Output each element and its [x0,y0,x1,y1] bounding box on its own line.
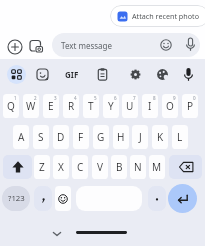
button[interactable]: Z [34,155,50,179]
button[interactable] [7,39,23,55]
staticText: Attach recent photo [132,11,200,21]
staticText: R [68,99,75,113]
button[interactable] [29,39,44,54]
staticText: H [117,130,125,144]
button[interactable]: S [33,125,49,149]
staticText: A [18,130,25,144]
button[interactable] [148,186,166,211]
button[interactable] [51,230,63,238]
staticText: K [157,130,164,144]
staticText: P [187,99,194,113]
staticText: J [139,130,142,144]
button[interactable]: I [142,94,158,118]
button[interactable] [184,38,197,52]
button[interactable] [149,61,176,88]
button[interactable]: F [73,125,89,149]
button[interactable] [89,61,116,88]
button[interactable]: V [92,155,108,179]
staticText: Y [108,99,114,113]
staticText: F [78,130,84,144]
staticText: 5 [94,95,97,101]
staticText: 7 [133,95,136,101]
button[interactable]: D [53,125,69,149]
staticText: X [58,160,64,174]
button[interactable]: W [23,94,39,118]
button[interactable]: R [63,94,79,118]
staticText: 4 [74,95,77,101]
button[interactable]: E [43,94,59,118]
button[interactable]: U [122,94,138,118]
staticText: G [97,130,105,144]
button[interactable]: Q [3,94,19,118]
staticText: 3 [54,95,57,101]
staticText: T [88,99,94,113]
staticText: L [177,130,183,144]
button[interactable]: B [111,155,127,179]
staticText: 6 [114,95,117,101]
staticText: 9 [173,95,176,101]
staticText: M [152,160,162,174]
button[interactable] [168,184,197,213]
button[interactable]: T [83,94,99,118]
staticText: ?123 [8,193,25,204]
button[interactable] [34,186,52,211]
staticText: E [48,99,54,113]
button[interactable] [122,61,149,88]
staticText: V [97,160,103,174]
staticText: I [148,99,152,113]
button[interactable]: X [53,155,69,179]
button[interactable] [175,61,202,88]
staticText: S [38,130,44,144]
staticText: D [57,130,65,144]
staticText: Z [39,160,45,174]
button[interactable] [3,155,32,179]
button[interactable]: G [93,125,109,149]
button[interactable]: L [172,125,188,149]
button[interactable]: N [130,155,146,179]
button[interactable]: O [162,94,178,118]
staticText: 2 [34,95,37,101]
button[interactable]: C [72,155,88,179]
button[interactable] [29,61,56,88]
staticText: Text message [61,40,113,51]
button[interactable] [55,186,71,211]
staticText: N [134,160,142,174]
staticText: 8 [153,95,156,101]
staticText: 0 [193,95,196,101]
button[interactable]: A [13,125,29,149]
staticText: 1 [14,95,17,101]
staticText: U [126,99,134,113]
button[interactable]: Y [103,94,119,118]
button[interactable] [76,186,142,211]
button[interactable] [169,155,202,179]
button[interactable]: P [182,94,198,118]
staticText: Q [7,99,15,113]
button[interactable]: K [152,125,168,149]
button[interactable]: H [113,125,129,149]
staticText: B [116,160,123,174]
button[interactable] [160,39,172,51]
button[interactable]: Attach recent photo [110,5,205,27]
button[interactable]: J [132,125,148,149]
staticText: W [26,99,36,113]
staticText: GIF [65,69,79,80]
button[interactable] [3,61,30,88]
button[interactable]: GIF [58,61,85,88]
button[interactable]: Text message [52,33,200,57]
button[interactable]: ?123 [2,186,30,211]
staticText: O [166,99,174,113]
button[interactable]: M [149,155,165,179]
staticText: C [77,160,84,174]
